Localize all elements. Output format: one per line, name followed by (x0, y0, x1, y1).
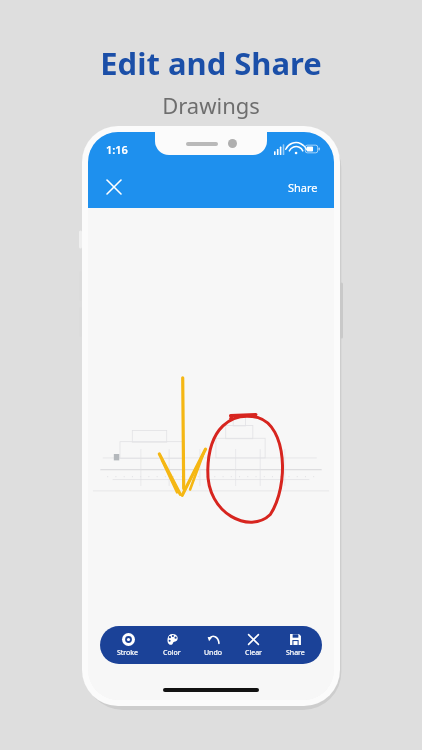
staticText: Clear (245, 648, 262, 658)
staticText: Undo (204, 648, 222, 658)
staticText: Share (286, 648, 305, 658)
button[interactable]: Share (280, 174, 326, 201)
staticText: Edit and Share (100, 42, 322, 84)
staticText: 1:16 (106, 142, 128, 157)
button[interactable]: Share (280, 630, 311, 661)
button[interactable]: Undo (198, 630, 228, 661)
staticText: Drawings (162, 90, 260, 120)
staticText: Share (288, 180, 318, 195)
button[interactable]: Stroke (111, 630, 145, 661)
staticText: Color (163, 648, 181, 658)
button[interactable]: Clear (239, 630, 268, 661)
button[interactable]: Close (96, 169, 132, 205)
staticText: Stroke (117, 648, 139, 658)
button[interactable]: Color (157, 630, 187, 661)
